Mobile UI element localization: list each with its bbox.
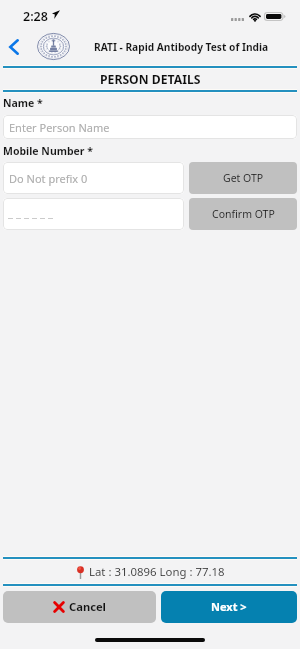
staticText: PERSON DETAILS [100,71,201,88]
staticText: 2:28 [23,8,48,25]
staticText: Enter Person Name [9,120,110,135]
staticText: Mobile Number * [3,144,93,158]
button[interactable]: Cancel [3,591,156,623]
button[interactable] [3,198,184,230]
staticText: Do Not prefix 0 [9,171,88,186]
staticText: Confirm OTP [212,207,275,221]
button[interactable]: Confirm OTP [189,198,297,230]
button[interactable]: Next > [161,591,297,623]
button[interactable]: Back [0,33,28,61]
staticText: Get OTP [223,171,264,185]
staticText: RATI - Rapid Antibody Test of India [94,40,269,54]
staticText: Cancel [69,599,106,614]
button[interactable]: Do Not prefix 0 [3,162,184,194]
button[interactable]: Get OTP [189,162,297,194]
staticText: Lat : 31.0896 Long : 77.18 [89,564,225,580]
staticText: Next > [211,599,247,614]
button[interactable]: Enter Person Name [3,115,297,139]
staticText: Name * [3,96,43,110]
